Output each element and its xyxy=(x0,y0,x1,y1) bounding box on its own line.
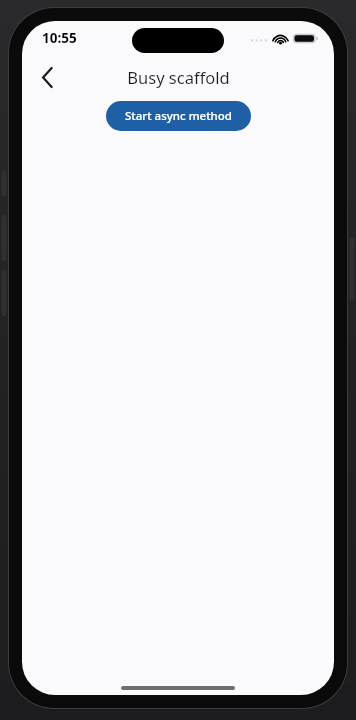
staticText: Start async method xyxy=(125,108,232,124)
staticText: 10:55 xyxy=(42,29,77,47)
staticText: Busy scaffold xyxy=(127,66,230,88)
button[interactable]: Back xyxy=(28,58,66,96)
button[interactable]: Start async method xyxy=(106,101,251,131)
